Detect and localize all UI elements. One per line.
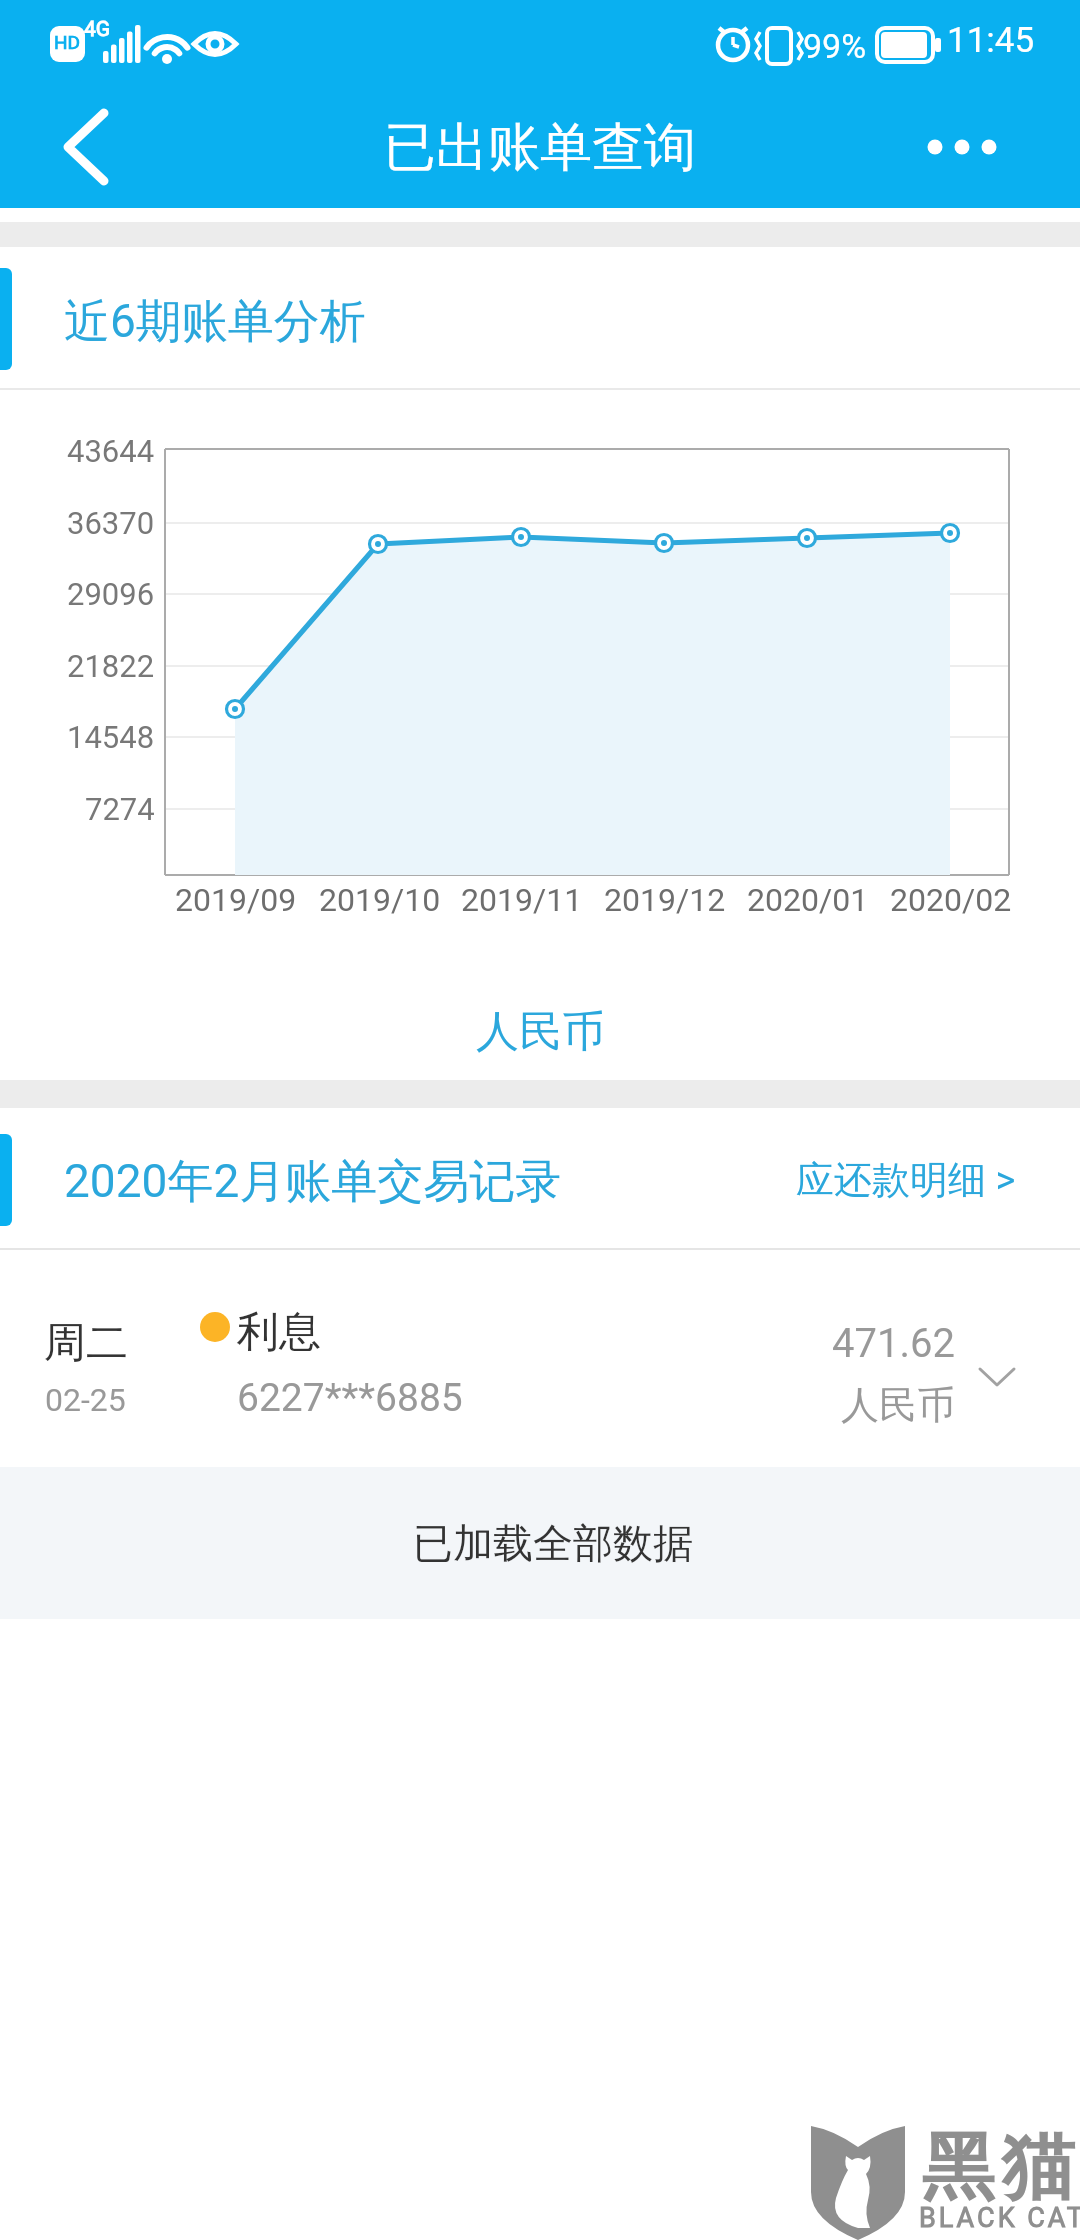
staticText: BLACK CAT	[919, 2202, 1080, 2234]
staticText: 29096	[67, 576, 155, 612]
staticText: 21822	[67, 648, 155, 684]
staticText: 黑猫	[918, 2122, 1078, 2214]
staticText: 近6期账单分析	[64, 293, 366, 351]
staticText: 99%	[803, 26, 867, 66]
staticText: 471.62	[832, 1320, 955, 1367]
staticText: 已加载全部数据	[413, 1518, 693, 1568]
staticText: 应还款明细 >	[796, 1156, 1016, 1204]
staticText: 7274	[85, 791, 155, 827]
button[interactable]: 周二	[0, 1250, 1080, 1467]
staticText: 4G	[84, 17, 111, 42]
staticText: 利息	[237, 1306, 321, 1359]
staticText: 02-25	[45, 1381, 126, 1419]
staticText: 2019/11	[461, 881, 583, 919]
button[interactable]	[900, 110, 1020, 185]
staticText: 人民币	[841, 1381, 955, 1427]
staticText: 36370	[67, 505, 155, 541]
staticText: 2020年2月账单交易记录	[64, 1153, 562, 1211]
staticText: 2019/12	[604, 881, 726, 919]
button[interactable]	[30, 100, 130, 195]
staticText: 14548	[67, 719, 155, 755]
staticText: HD	[54, 31, 81, 53]
staticText: 人民币	[476, 1005, 605, 1055]
staticText: 2019/10	[319, 881, 441, 919]
button[interactable]: 应还款明细 >	[750, 1140, 1016, 1220]
staticText: 2020/01	[747, 881, 869, 919]
staticText: 周二	[44, 1317, 128, 1370]
staticText: 2019/09	[175, 881, 297, 919]
staticText: 2020/02	[890, 881, 1012, 919]
staticText: 6227***6885	[237, 1375, 463, 1421]
staticText: 已出账单查询	[384, 115, 696, 181]
staticText: 11:45	[947, 20, 1035, 61]
staticText: 43644	[67, 433, 155, 469]
